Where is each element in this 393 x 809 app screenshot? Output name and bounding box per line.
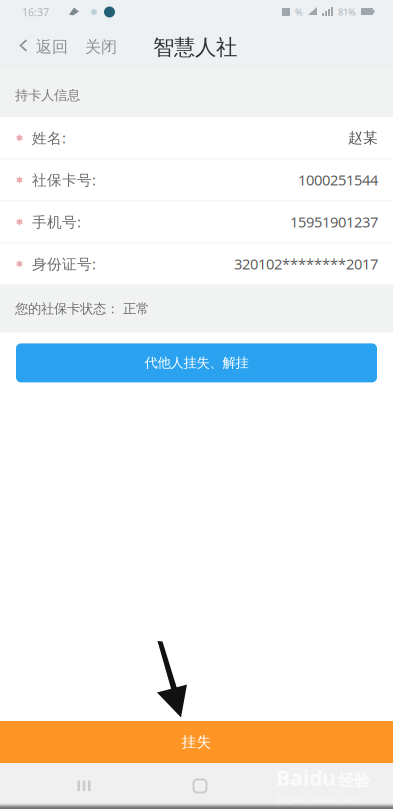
- staticText: 社保卡号:: [32, 170, 96, 190]
- staticText: 返回: [36, 37, 68, 57]
- staticText: 手机号:: [32, 212, 81, 232]
- button[interactable]: Home: [171, 763, 229, 809]
- button[interactable]: 挂失: [0, 721, 393, 763]
- staticText: 持卡人信息: [15, 87, 80, 103]
- staticText: 代他人挂失、解挂: [144, 355, 248, 371]
- staticText: 智慧人社: [153, 34, 237, 61]
- staticText: 身份证号:: [32, 254, 96, 274]
- staticText: 关闭: [85, 37, 117, 57]
- button[interactable]: 代他人挂失、解挂: [16, 343, 377, 382]
- staticText: 经验: [338, 771, 370, 791]
- staticText: 您的社保卡状态： 正常: [15, 301, 149, 317]
- button[interactable]: 关闭: [78, 24, 124, 67]
- staticText: 320102********2017: [234, 254, 378, 274]
- staticText: 1000251544: [298, 170, 378, 190]
- staticText: Baidu: [276, 763, 336, 792]
- button[interactable]: Recents: [55, 763, 113, 809]
- staticText: 15951901237: [290, 212, 378, 232]
- staticText: 赵某: [348, 129, 378, 147]
- staticText: 姓名:: [32, 128, 66, 148]
- button[interactable]: 返回: [0, 24, 78, 67]
- staticText: 81%: [338, 6, 356, 18]
- staticText: %: [295, 6, 303, 18]
- staticText: 16:37: [22, 5, 49, 19]
- staticText: jingyan.baidu.com: [276, 793, 358, 805]
- staticText: 挂失: [181, 733, 211, 751]
